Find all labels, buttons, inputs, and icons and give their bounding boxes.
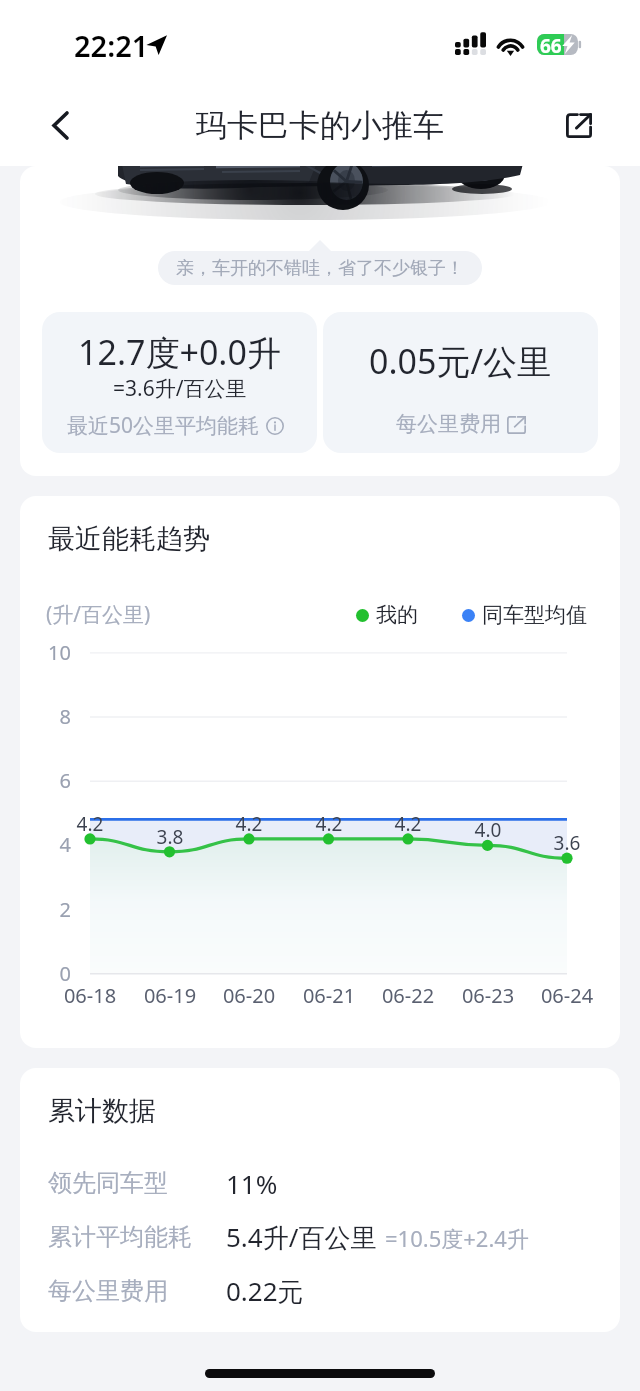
- button[interactable]: Back: [31, 96, 89, 154]
- staticText: 22:21: [74, 26, 149, 65]
- staticText: 12.7度+0.0升: [78, 329, 281, 375]
- staticText: 5.4升/百公里: [226, 1219, 377, 1255]
- button[interactable]: 每公里费用: [20, 1273, 620, 1309]
- staticText: 累计数据: [48, 1094, 156, 1128]
- staticText: 06-20: [209, 982, 289, 1009]
- staticText: (升/百公里): [46, 600, 151, 629]
- staticText: 每公里费用: [396, 411, 501, 437]
- staticText: 玛卡巴卡的小推车: [196, 106, 444, 145]
- staticText: 3.8: [145, 824, 195, 850]
- staticText: 06-18: [50, 982, 130, 1009]
- staticText: 最近能耗趋势: [48, 522, 210, 556]
- button[interactable]: Share: [551, 97, 607, 153]
- staticText: 66: [540, 33, 562, 54]
- staticText: 我的: [376, 602, 418, 628]
- staticText: 0: [21, 960, 71, 987]
- staticText: 11%: [226, 1166, 278, 1201]
- button[interactable]: 12.7度+0.0升: [42, 312, 317, 453]
- staticText: 累计平均能耗: [48, 1222, 192, 1252]
- button[interactable]: 0.05元/公里: [323, 312, 598, 453]
- staticText: 3.6: [542, 830, 592, 856]
- staticText: 4.2: [224, 811, 274, 837]
- staticText: =3.6升/百公里: [113, 374, 247, 403]
- staticText: 06-21: [289, 982, 369, 1009]
- staticText: 4.2: [65, 811, 115, 837]
- staticText: 0.05元/公里: [369, 338, 552, 384]
- staticText: 4.2: [304, 811, 354, 837]
- staticText: 每公里费用: [48, 1276, 168, 1306]
- staticText: 同车型均值: [482, 602, 587, 628]
- staticText: 4: [21, 831, 71, 858]
- staticText: 4.0: [463, 817, 513, 843]
- staticText: 06-23: [448, 982, 528, 1009]
- staticText: 4.2: [383, 811, 433, 837]
- staticText: 8: [21, 703, 71, 730]
- staticText: 06-22: [368, 982, 448, 1009]
- staticText: 2: [21, 896, 71, 923]
- button[interactable]: 领先同车型: [20, 1165, 620, 1201]
- button[interactable]: 累计平均能耗: [20, 1219, 620, 1255]
- staticText: =10.5度+2.4升: [385, 1223, 529, 1253]
- staticText: 6: [21, 767, 71, 794]
- staticText: 领先同车型: [48, 1168, 168, 1198]
- staticText: 最近50公里平均能耗: [67, 411, 260, 440]
- staticText: 06-24: [527, 982, 607, 1009]
- staticText: 0.22元: [226, 1273, 304, 1309]
- staticText: 06-19: [130, 982, 210, 1009]
- staticText: 10: [21, 639, 71, 666]
- staticText: 亲，车开的不错哇，省了不少银子！: [176, 257, 464, 280]
